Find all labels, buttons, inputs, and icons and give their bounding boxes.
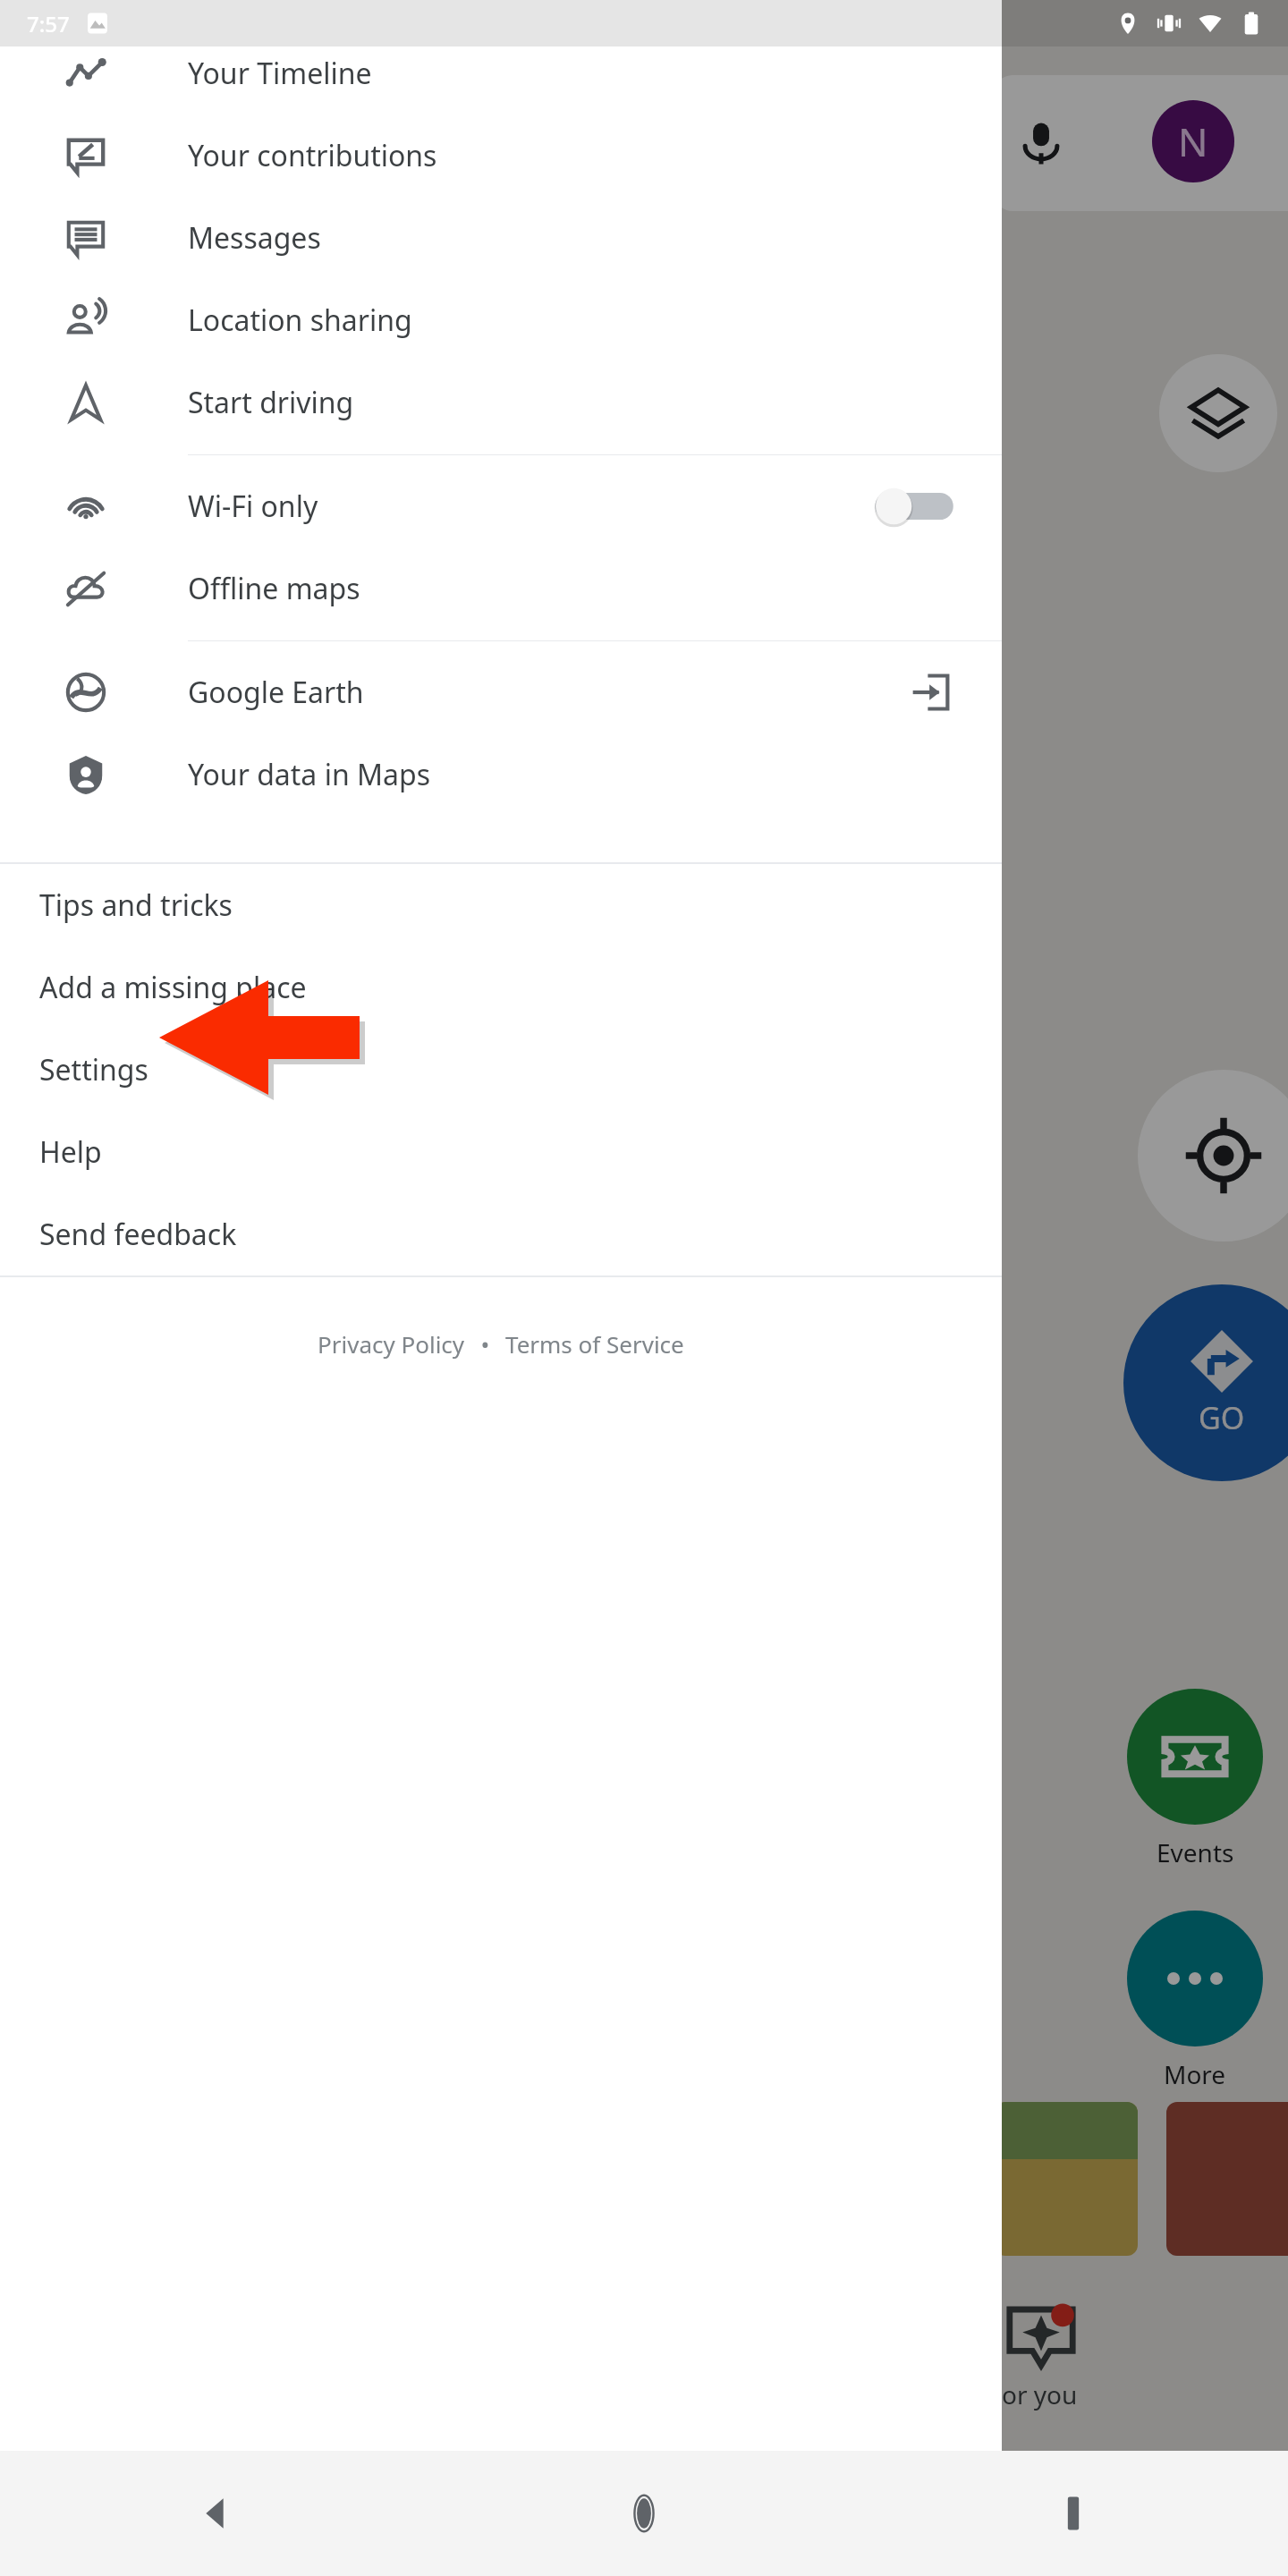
button[interactable]: Location sharing xyxy=(0,279,1002,361)
staticText: Your contributions xyxy=(188,136,437,175)
button[interactable]: Wi-Fi only xyxy=(0,465,1002,547)
staticText: Wi-Fi only xyxy=(188,487,318,526)
staticText: • xyxy=(469,1328,502,1360)
staticText: Events xyxy=(1157,1835,1234,1869)
button[interactable]: Privacy Policy xyxy=(314,1318,469,1370)
button[interactable]: Your data in Maps xyxy=(0,733,1002,816)
button[interactable]: Wi-Fi only toggle xyxy=(866,478,959,535)
staticText: Send feedback xyxy=(39,1215,237,1254)
button[interactable]: Your contributions xyxy=(0,114,1002,197)
button[interactable]: Offline maps xyxy=(0,547,1002,630)
staticText: Help xyxy=(39,1132,102,1172)
button[interactable]: Messages xyxy=(0,197,1002,279)
staticText: N xyxy=(1178,114,1208,168)
button[interactable]: Open Google Earth xyxy=(902,664,959,721)
button[interactable]: My location xyxy=(1138,1070,1288,1241)
button[interactable]: GO xyxy=(1123,1284,1288,1481)
staticText: Location sharing xyxy=(188,301,412,340)
staticText: 7:57 xyxy=(27,9,70,38)
staticText: Offline maps xyxy=(188,569,360,608)
staticText: Google Earth xyxy=(188,673,364,712)
staticText: Start driving xyxy=(188,383,354,422)
button[interactable]: Help xyxy=(0,1111,1002,1193)
button[interactable]: Your Timeline xyxy=(0,32,1002,114)
button[interactable]: Tips and tricks xyxy=(0,864,1002,946)
staticText: GO xyxy=(1199,1397,1245,1438)
button[interactable]: Send feedback xyxy=(0,1193,1002,1275)
button[interactable]: Home xyxy=(429,2451,859,2576)
button[interactable]: Terms of Service xyxy=(502,1318,688,1370)
staticText: or you xyxy=(1002,2377,1078,2411)
button[interactable] xyxy=(1127,1689,1263,1825)
staticText: Messages xyxy=(188,218,321,258)
staticText: More xyxy=(1164,2057,1226,2091)
button[interactable] xyxy=(1127,1911,1263,2046)
staticText: Your Timeline xyxy=(188,54,372,93)
button[interactable]: Google Earth xyxy=(0,651,1002,733)
staticText: Tips and tricks xyxy=(39,885,233,925)
button[interactable]: Map layers xyxy=(1159,354,1277,472)
button[interactable]: Settings xyxy=(0,1029,1002,1111)
staticText: Your data in Maps xyxy=(188,755,430,794)
button[interactable]: Start driving xyxy=(0,361,1002,444)
button[interactable]: Back xyxy=(0,2451,429,2576)
button[interactable]: Recent apps xyxy=(859,2451,1288,2576)
staticText: Settings xyxy=(39,1050,148,1089)
button[interactable]: Add a missing place xyxy=(0,946,1002,1029)
staticText: Add a missing place xyxy=(39,968,307,1007)
